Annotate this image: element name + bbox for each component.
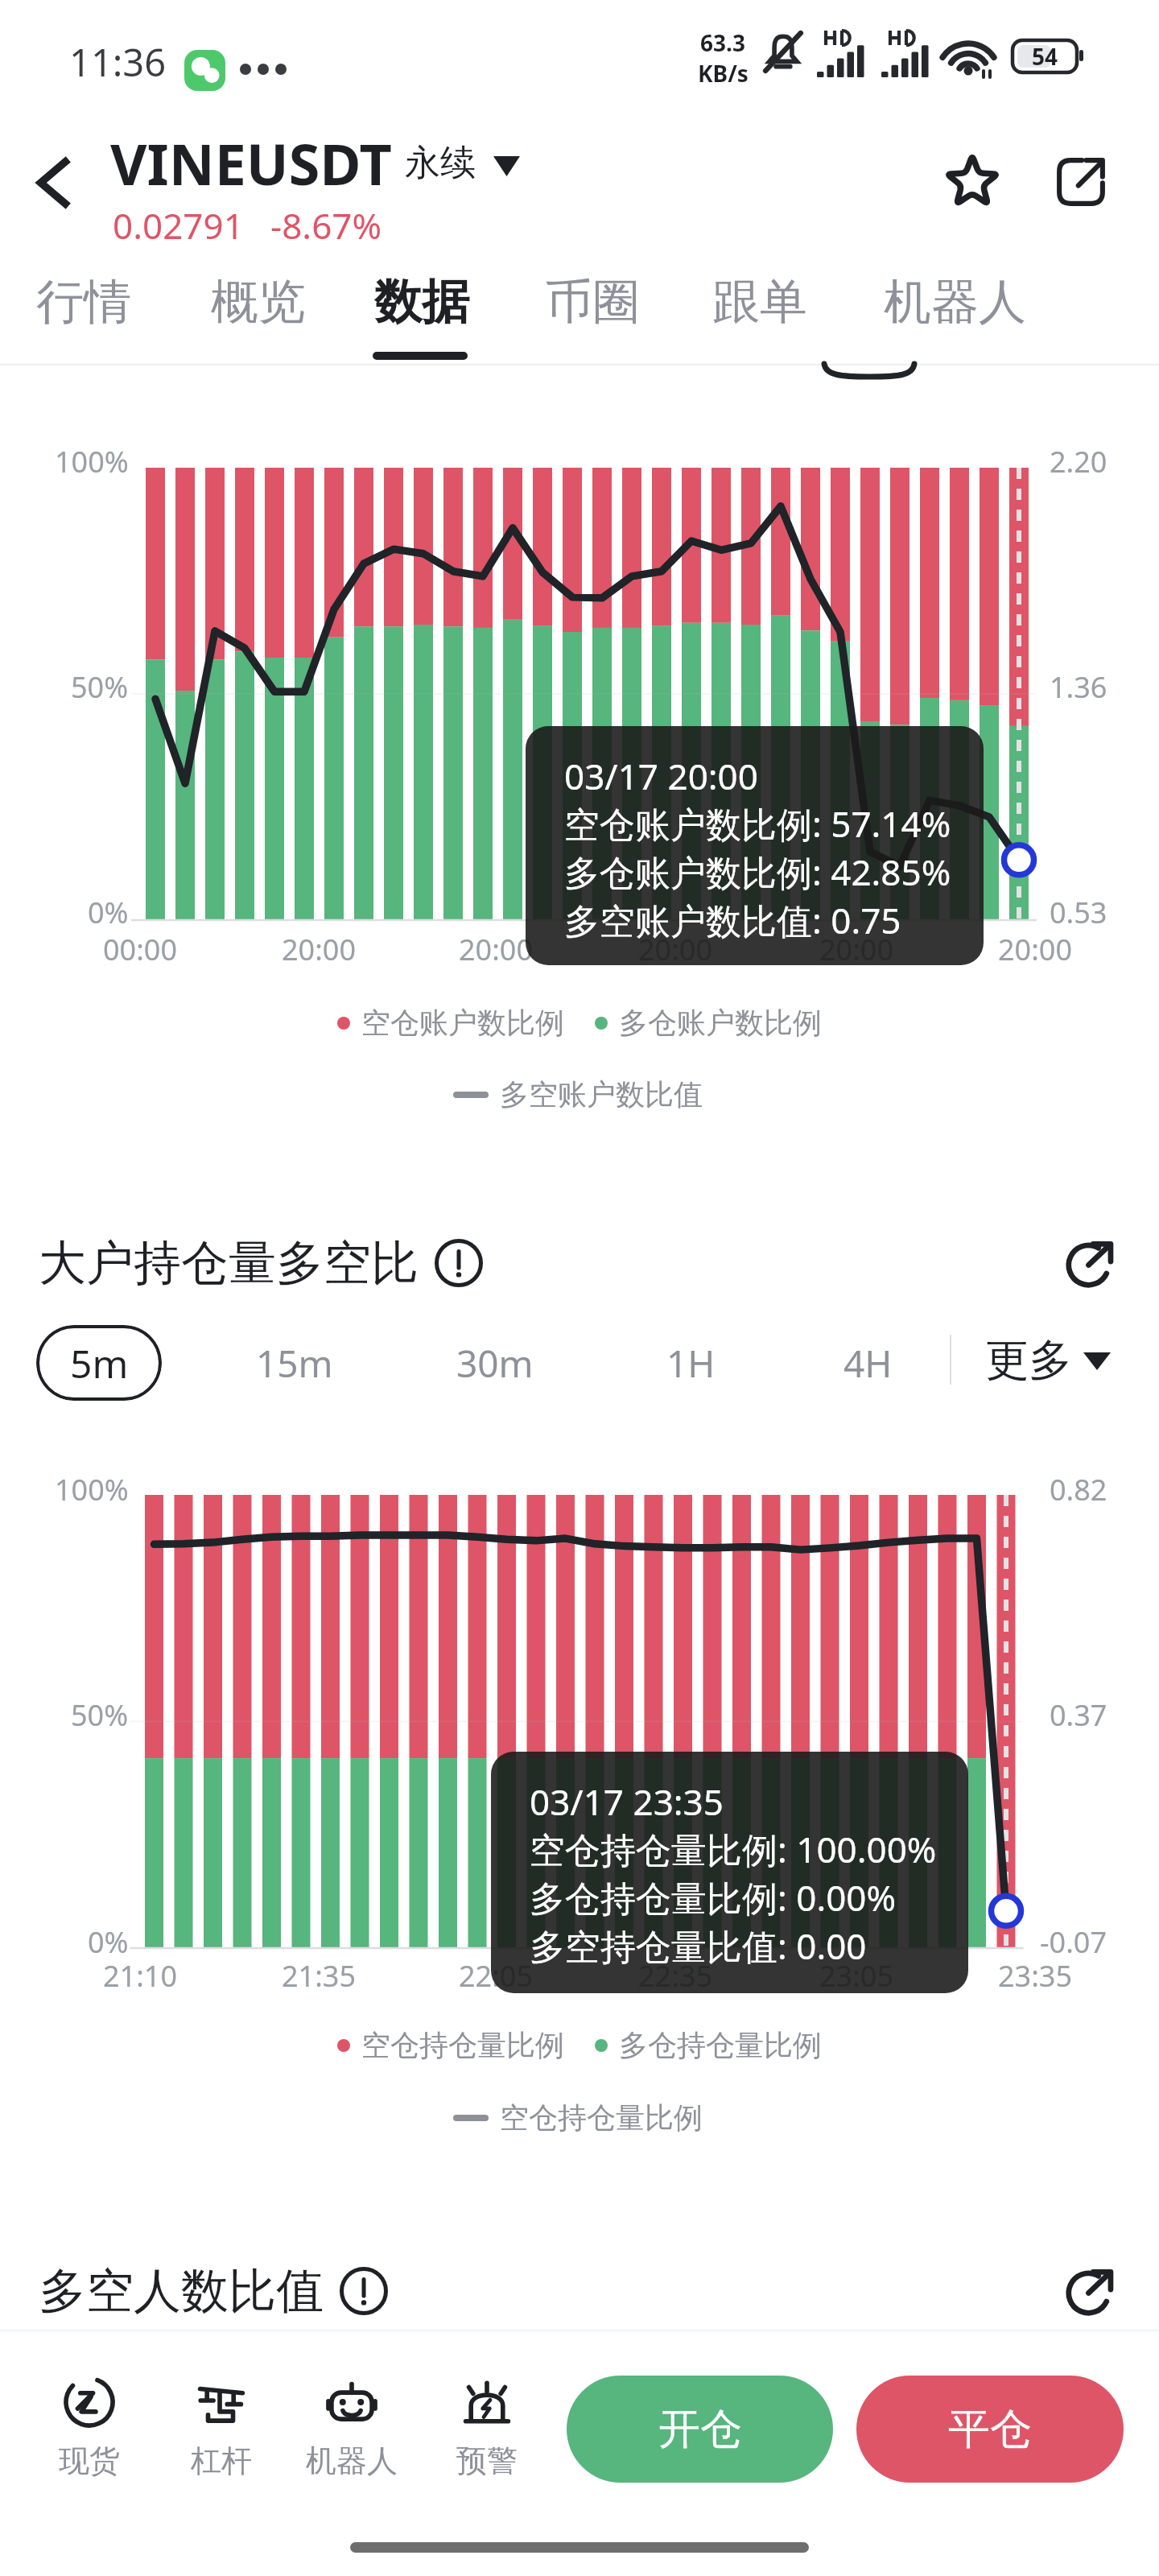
button[interactable]: 杠杆 [169,2376,274,2480]
button[interactable]: 1H [666,1338,716,1389]
button[interactable]: 数据 [374,272,469,332]
staticText: 20:00 [998,930,1073,969]
staticText: 永续 [405,141,476,185]
staticText: 23:35 [998,1956,1073,1996]
staticText: VINEUSDT [110,125,392,201]
staticText: 21:35 [282,1956,357,1996]
staticText: 20:00 [819,930,894,969]
staticText: 2.20 [1050,442,1107,481]
staticText: 03/17 20:00 空仓账户数比例: 57.14% 多仓账户数比例: 42.… [564,752,951,944]
staticText: -0.07 [1040,1922,1107,1962]
staticText: 0.02791 [113,201,244,250]
button[interactable]: Share [1041,142,1121,222]
staticText: 63.3 [700,27,745,58]
button[interactable]: 开仓 [567,2376,833,2483]
staticText: 100% [55,442,129,481]
staticText: 0.82 [1050,1470,1107,1509]
button[interactable]: Expand [1056,2256,1125,2326]
staticText: 概览 [211,272,306,332]
staticText: 20:00 [282,930,357,969]
staticText: 平仓 [948,2403,1032,2456]
staticText: 20:00 [459,930,534,969]
staticText: 5m [70,1337,129,1389]
staticText: 跟单 [712,272,807,332]
staticText: 1.36 [1050,667,1107,707]
staticText: 15m [256,1338,333,1389]
button[interactable]: 平仓 [856,2376,1124,2483]
button[interactable]: 现货 [37,2376,142,2480]
staticText: 现货 [59,2442,120,2480]
staticText: 4H [843,1338,893,1389]
staticText: 0% [88,893,129,932]
staticText: 23:05 [819,1956,894,1996]
button[interactable]: Back [8,138,97,227]
button[interactable]: 5m [36,1325,162,1401]
staticText: 22:05 [459,1956,534,1996]
button[interactable]: 预警 [435,2376,539,2480]
button[interactable]: 更多 [985,1333,1111,1388]
staticText: KB/s [698,58,749,89]
staticText: 50% [71,1695,129,1735]
staticText: 行情 [36,272,131,332]
staticText: 开仓 [658,2403,742,2456]
button[interactable]: 30m [456,1338,534,1389]
staticText: 预警 [456,2442,518,2480]
staticText: 30m [456,1338,534,1389]
staticText: 0.53 [1050,893,1107,932]
staticText: 数据 [374,272,469,332]
staticText: 21:10 [103,1956,178,1996]
staticText: 更多 [985,1333,1072,1388]
staticText: 1H [666,1338,716,1389]
staticText: 多仓账户数比例 [619,1005,822,1041]
staticText: 00:00 [103,930,178,969]
button[interactable]: 概览 [211,272,306,332]
button[interactable]: 机器人 [884,272,1026,332]
button[interactable]: 行情 [36,272,131,332]
staticText: 100% [55,1470,129,1509]
button[interactable]: 跟单 [712,272,807,332]
staticText: 币圈 [545,272,640,332]
button[interactable]: 币圈 [545,272,640,332]
staticText: 50% [71,667,129,707]
staticText: 机器人 [306,2442,398,2480]
staticText: 杠杆 [191,2442,252,2480]
staticText: 22:35 [638,1956,713,1996]
staticText: 机器人 [884,272,1026,332]
staticText: 0% [88,1922,129,1962]
button[interactable]: 15m [256,1338,333,1389]
staticText: 03/17 23:35 空仓持仓量比例: 100.00% 多仓持仓量比例: 0.… [530,1777,937,1970]
staticText: 11:36 [69,36,167,88]
staticText: 0.37 [1050,1695,1107,1735]
staticText: 大户持仓量多空比 [39,1233,419,1293]
staticText: 空仓持仓量比例 [500,2099,703,2136]
button[interactable]: 机器人 [299,2376,404,2480]
staticText: 多仓持仓量比例 [619,2027,822,2063]
staticText: 多空账户数比值 [500,1076,703,1113]
staticText: 空仓持仓量比例 [361,2027,564,2063]
staticText: -8.67% [270,201,382,250]
staticText: 空仓账户数比例 [361,1005,564,1041]
staticText: 20:00 [638,930,713,969]
button[interactable]: Favorite [932,141,1013,221]
button[interactable]: 4H [843,1338,893,1389]
staticText: 多空人数比值 [39,2261,324,2321]
button[interactable]: Expand [1056,1228,1125,1298]
staticText: 54 [1032,41,1058,72]
button[interactable]: VINEUSDT [110,125,520,201]
